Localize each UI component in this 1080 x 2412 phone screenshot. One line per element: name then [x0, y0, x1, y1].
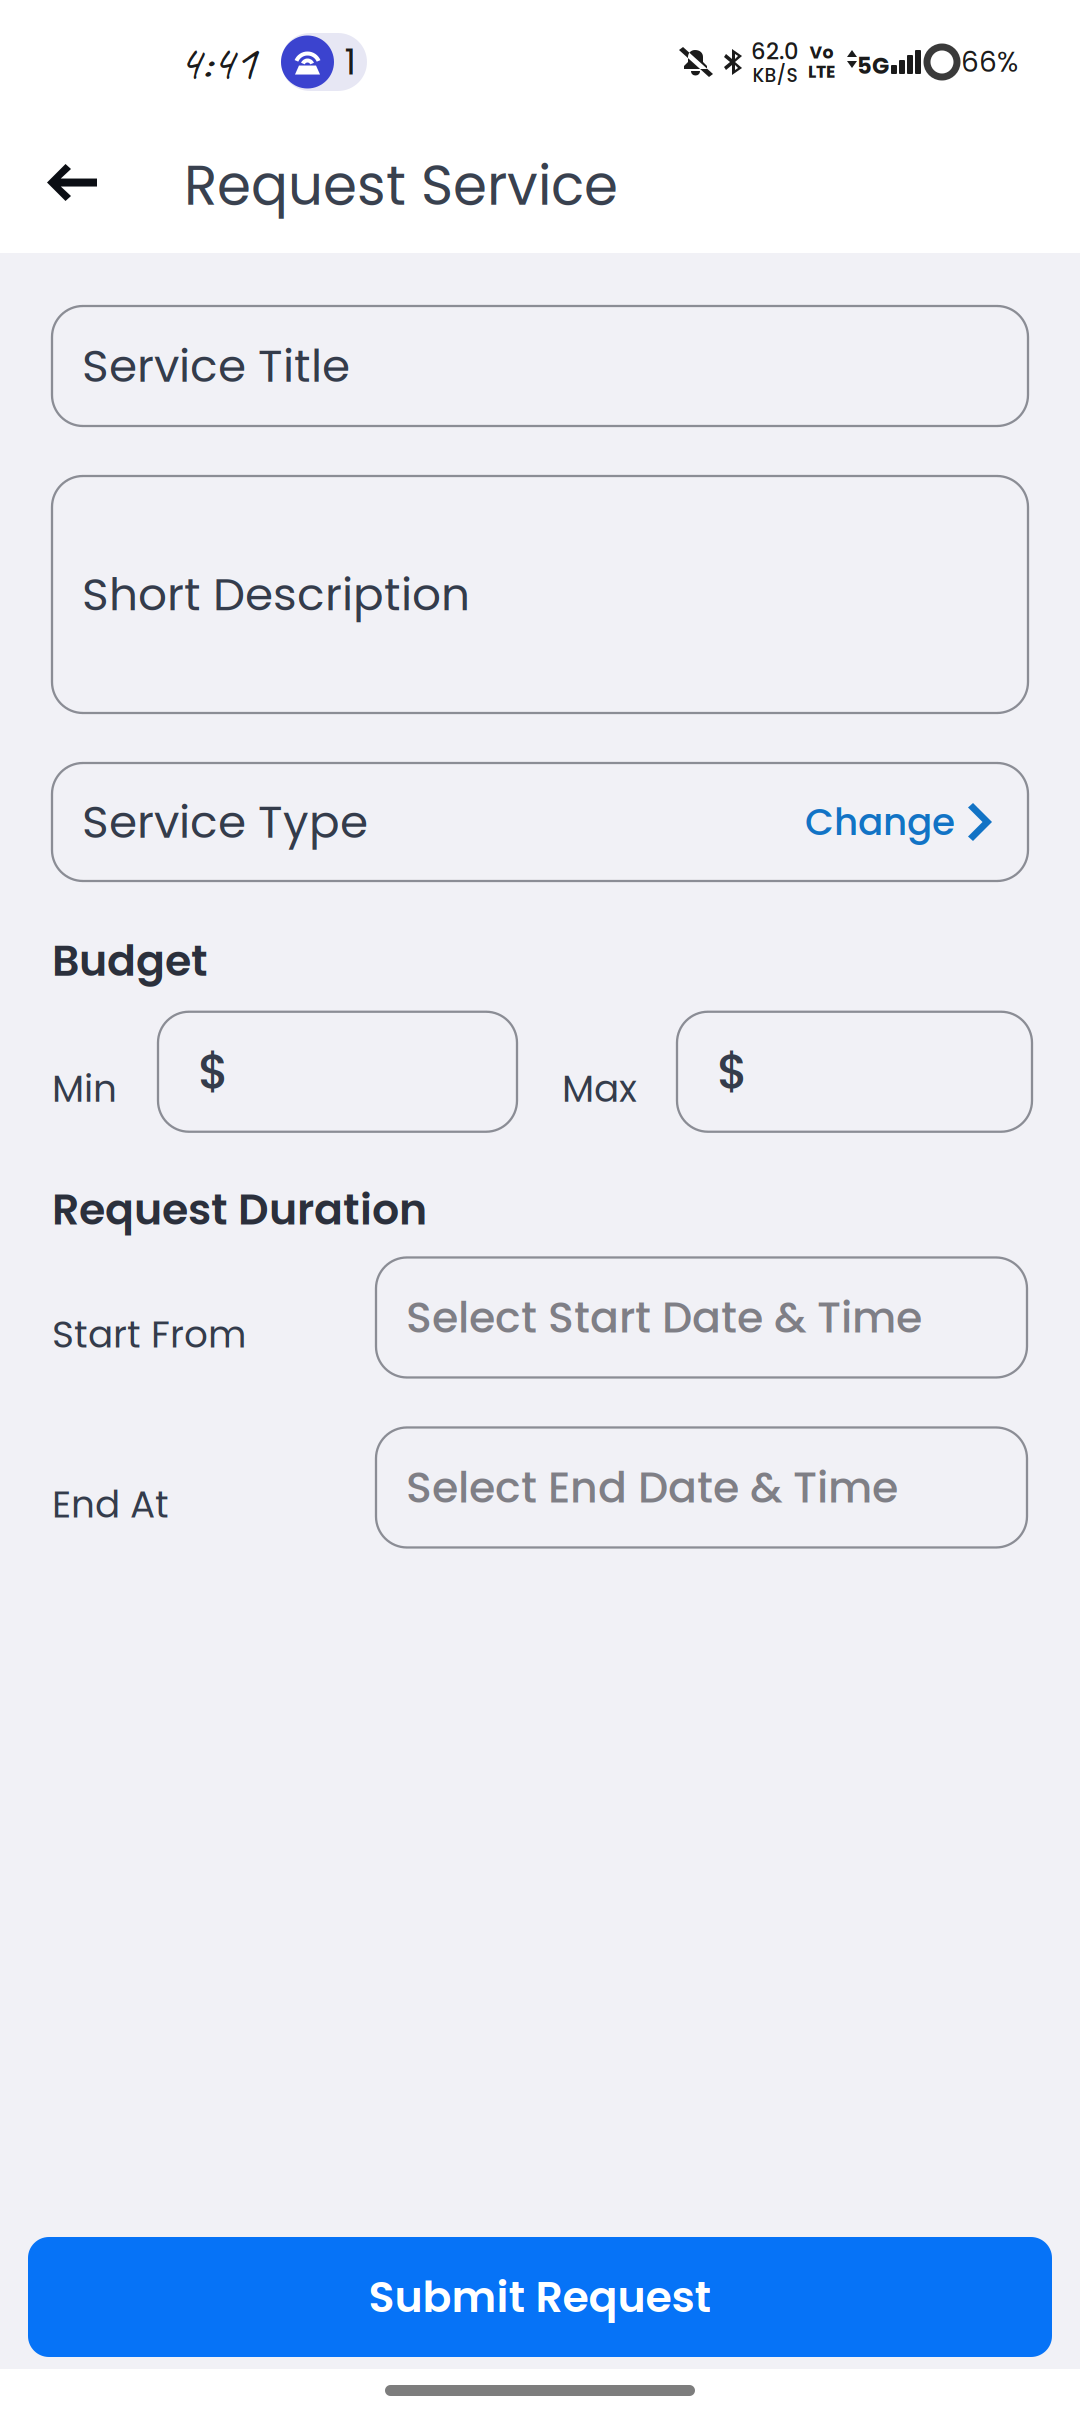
button[interactable]: Service Title	[52, 306, 1028, 426]
staticText: Select End Date & Time	[406, 1458, 898, 1517]
staticText: KB/S	[752, 62, 797, 88]
staticText: 4:41	[178, 30, 257, 94]
staticText: Service Title	[82, 334, 350, 398]
staticText: Service Type	[82, 790, 368, 854]
button[interactable]: Maximum budget	[677, 1012, 1032, 1132]
staticText: Budget	[52, 931, 208, 991]
staticText: 5G	[857, 50, 889, 82]
staticText: 62.0	[751, 36, 799, 67]
staticText: Max	[562, 1063, 637, 1115]
staticText: $	[198, 1038, 229, 1105]
staticText: Start From	[52, 1308, 246, 1361]
staticText: Short Description	[82, 563, 470, 626]
button[interactable]: Submit Request	[28, 2237, 1052, 2357]
staticText: Select Start Date & Time	[406, 1288, 922, 1347]
staticText: 66%	[961, 42, 1018, 82]
staticText: Vo	[809, 40, 833, 64]
button[interactable]: Select End Date & Time	[376, 1427, 1027, 1547]
staticText: 1	[344, 37, 356, 87]
staticText: Request Duration	[52, 1180, 427, 1239]
button[interactable]: Service Type	[52, 763, 1028, 881]
staticText: Change	[805, 796, 955, 848]
staticText: Submit Request	[368, 2267, 711, 2327]
staticText: LTE	[808, 59, 835, 84]
button[interactable]: Short Description	[52, 476, 1028, 713]
button[interactable]: Minimum budget	[158, 1012, 517, 1132]
button[interactable]: Back	[0, 126, 138, 250]
staticText: $	[717, 1038, 748, 1105]
staticText: Request Service	[184, 147, 618, 224]
button[interactable]: Select Start Date & Time	[376, 1257, 1027, 1377]
staticText: End At	[52, 1478, 169, 1531]
staticText: Min	[52, 1063, 117, 1115]
